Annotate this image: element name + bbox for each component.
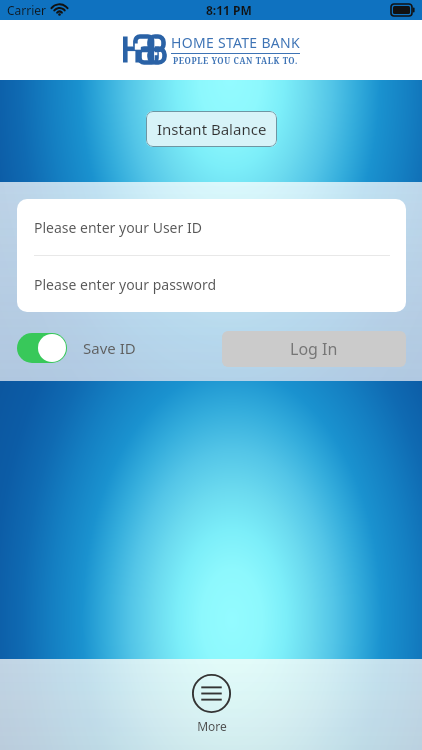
staticText: Please enter your password [34,275,217,294]
staticText: Instant Balance [157,119,267,139]
button[interactable]: Please enter your password [17,256,406,312]
staticText: Carrier [7,2,47,18]
button[interactable]: More [191,673,232,734]
staticText: Save ID [83,338,136,358]
button[interactable]: Instant Balance [146,111,277,147]
staticText: HOME STATE BANK [171,33,300,52]
staticText: Please enter your User ID [34,218,202,237]
button[interactable]: Please enter your User ID [17,199,406,255]
staticText: PEOPLE YOU CAN TALK TO. [173,55,298,66]
button[interactable]: Save ID [17,333,136,363]
button[interactable]: Log In [222,331,406,367]
staticText: 8:11 PM [206,2,252,18]
staticText: More [197,718,227,734]
staticText: Log In [290,338,338,360]
